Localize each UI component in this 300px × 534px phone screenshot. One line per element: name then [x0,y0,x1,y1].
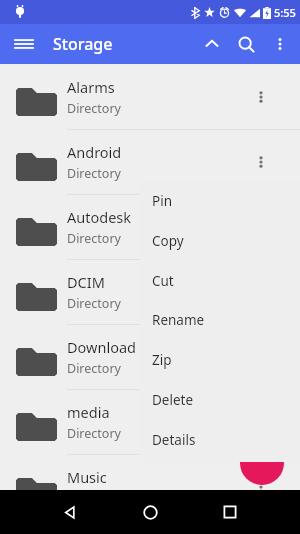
button[interactable]: Music [0,454,300,519]
staticText: Download [67,337,136,357]
button[interactable]: media [0,389,300,454]
staticText: Directory [67,100,121,117]
staticText: Directory [67,295,121,312]
staticText: Android [67,142,122,162]
button[interactable]: Autodesk [0,194,300,259]
staticText: Music [67,467,107,487]
button[interactable]: Home [130,492,170,532]
button[interactable]: Alarms [0,64,300,129]
button[interactable]: Recent apps [210,492,250,532]
staticText: Directory [67,230,121,247]
staticText: Details [152,431,196,449]
button[interactable]: Search [229,27,263,61]
button[interactable]: More options for Android [244,145,278,179]
button[interactable]: Rename [139,300,300,340]
button[interactable]: More options for Alarms [244,80,278,114]
button[interactable]: Zip [139,340,300,380]
button[interactable]: More options [263,27,297,61]
button[interactable]: Back [50,492,90,532]
button[interactable]: Collapse [195,27,229,61]
staticText: media [67,402,110,422]
staticText: Directory [67,425,121,442]
staticText: 5:55 [274,5,296,20]
staticText: Cut [152,272,174,290]
staticText: DCIM [67,272,105,292]
button[interactable]: Add [240,441,284,485]
staticText: Storage [53,33,113,55]
staticText: Directory [67,165,121,182]
staticText: Pin [152,192,172,210]
button[interactable]: Pin [139,181,300,221]
staticText: Rename [152,311,205,329]
staticText: Directory [67,360,121,377]
staticText: Copy [152,232,184,250]
button[interactable]: Cut [139,261,300,301]
button[interactable]: Copy [139,221,300,261]
button[interactable]: Details [139,420,300,460]
staticText: Zip [152,351,172,369]
staticText: Directory [67,490,121,507]
button[interactable]: Open navigation drawer [4,24,44,64]
staticText: Delete [152,391,194,409]
button[interactable]: Delete [139,380,300,420]
staticText: Autodesk [67,207,132,227]
button[interactable]: Android [0,129,300,194]
staticText: Alarms [67,77,115,97]
button[interactable]: Download [0,324,300,389]
button[interactable]: More options for Music [244,470,278,504]
button[interactable]: DCIM [0,259,300,324]
